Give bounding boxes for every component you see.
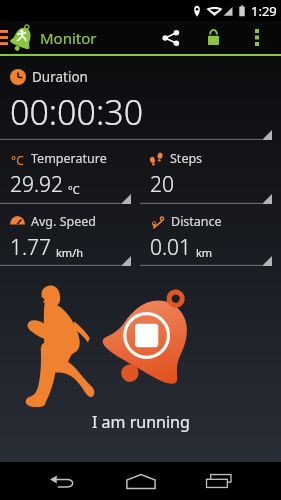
staticText: 20: [150, 170, 174, 199]
button[interactable]: Recent apps: [180, 462, 258, 500]
staticText: 0.01: [150, 233, 192, 262]
staticText: 1.77: [10, 233, 52, 262]
staticText: km: [196, 245, 213, 260]
staticText: I am running: [92, 411, 190, 433]
button[interactable]: °C: [0, 140, 140, 204]
button[interactable]: Avg. Speed: [0, 204, 140, 266]
staticText: °C: [11, 152, 24, 166]
staticText: Temperature: [31, 150, 107, 167]
staticText: 1:29: [251, 2, 277, 20]
button[interactable]: Steps: [140, 140, 281, 204]
button[interactable]: Duration: [0, 56, 281, 140]
staticText: Monitor: [40, 28, 97, 48]
button[interactable]: Home: [102, 462, 180, 500]
staticText: km/h: [56, 245, 84, 260]
staticText: °C: [68, 182, 80, 197]
staticText: Steps: [170, 150, 203, 167]
button[interactable]: Open navigation drawer: [0, 21, 36, 54]
button[interactable]: More options: [235, 21, 279, 54]
staticText: Duration: [32, 68, 88, 86]
button[interactable]: Distance: [140, 204, 281, 266]
staticText: 00:00:30: [10, 89, 144, 135]
staticText: Avg. Speed: [31, 213, 96, 230]
button[interactable]: Share: [149, 21, 192, 54]
button[interactable]: Lock: [192, 21, 235, 54]
staticText: 29.92: [10, 170, 64, 199]
button[interactable]: Stop: [103, 286, 200, 385]
staticText: Distance: [171, 213, 222, 230]
button[interactable]: Back: [24, 462, 102, 500]
